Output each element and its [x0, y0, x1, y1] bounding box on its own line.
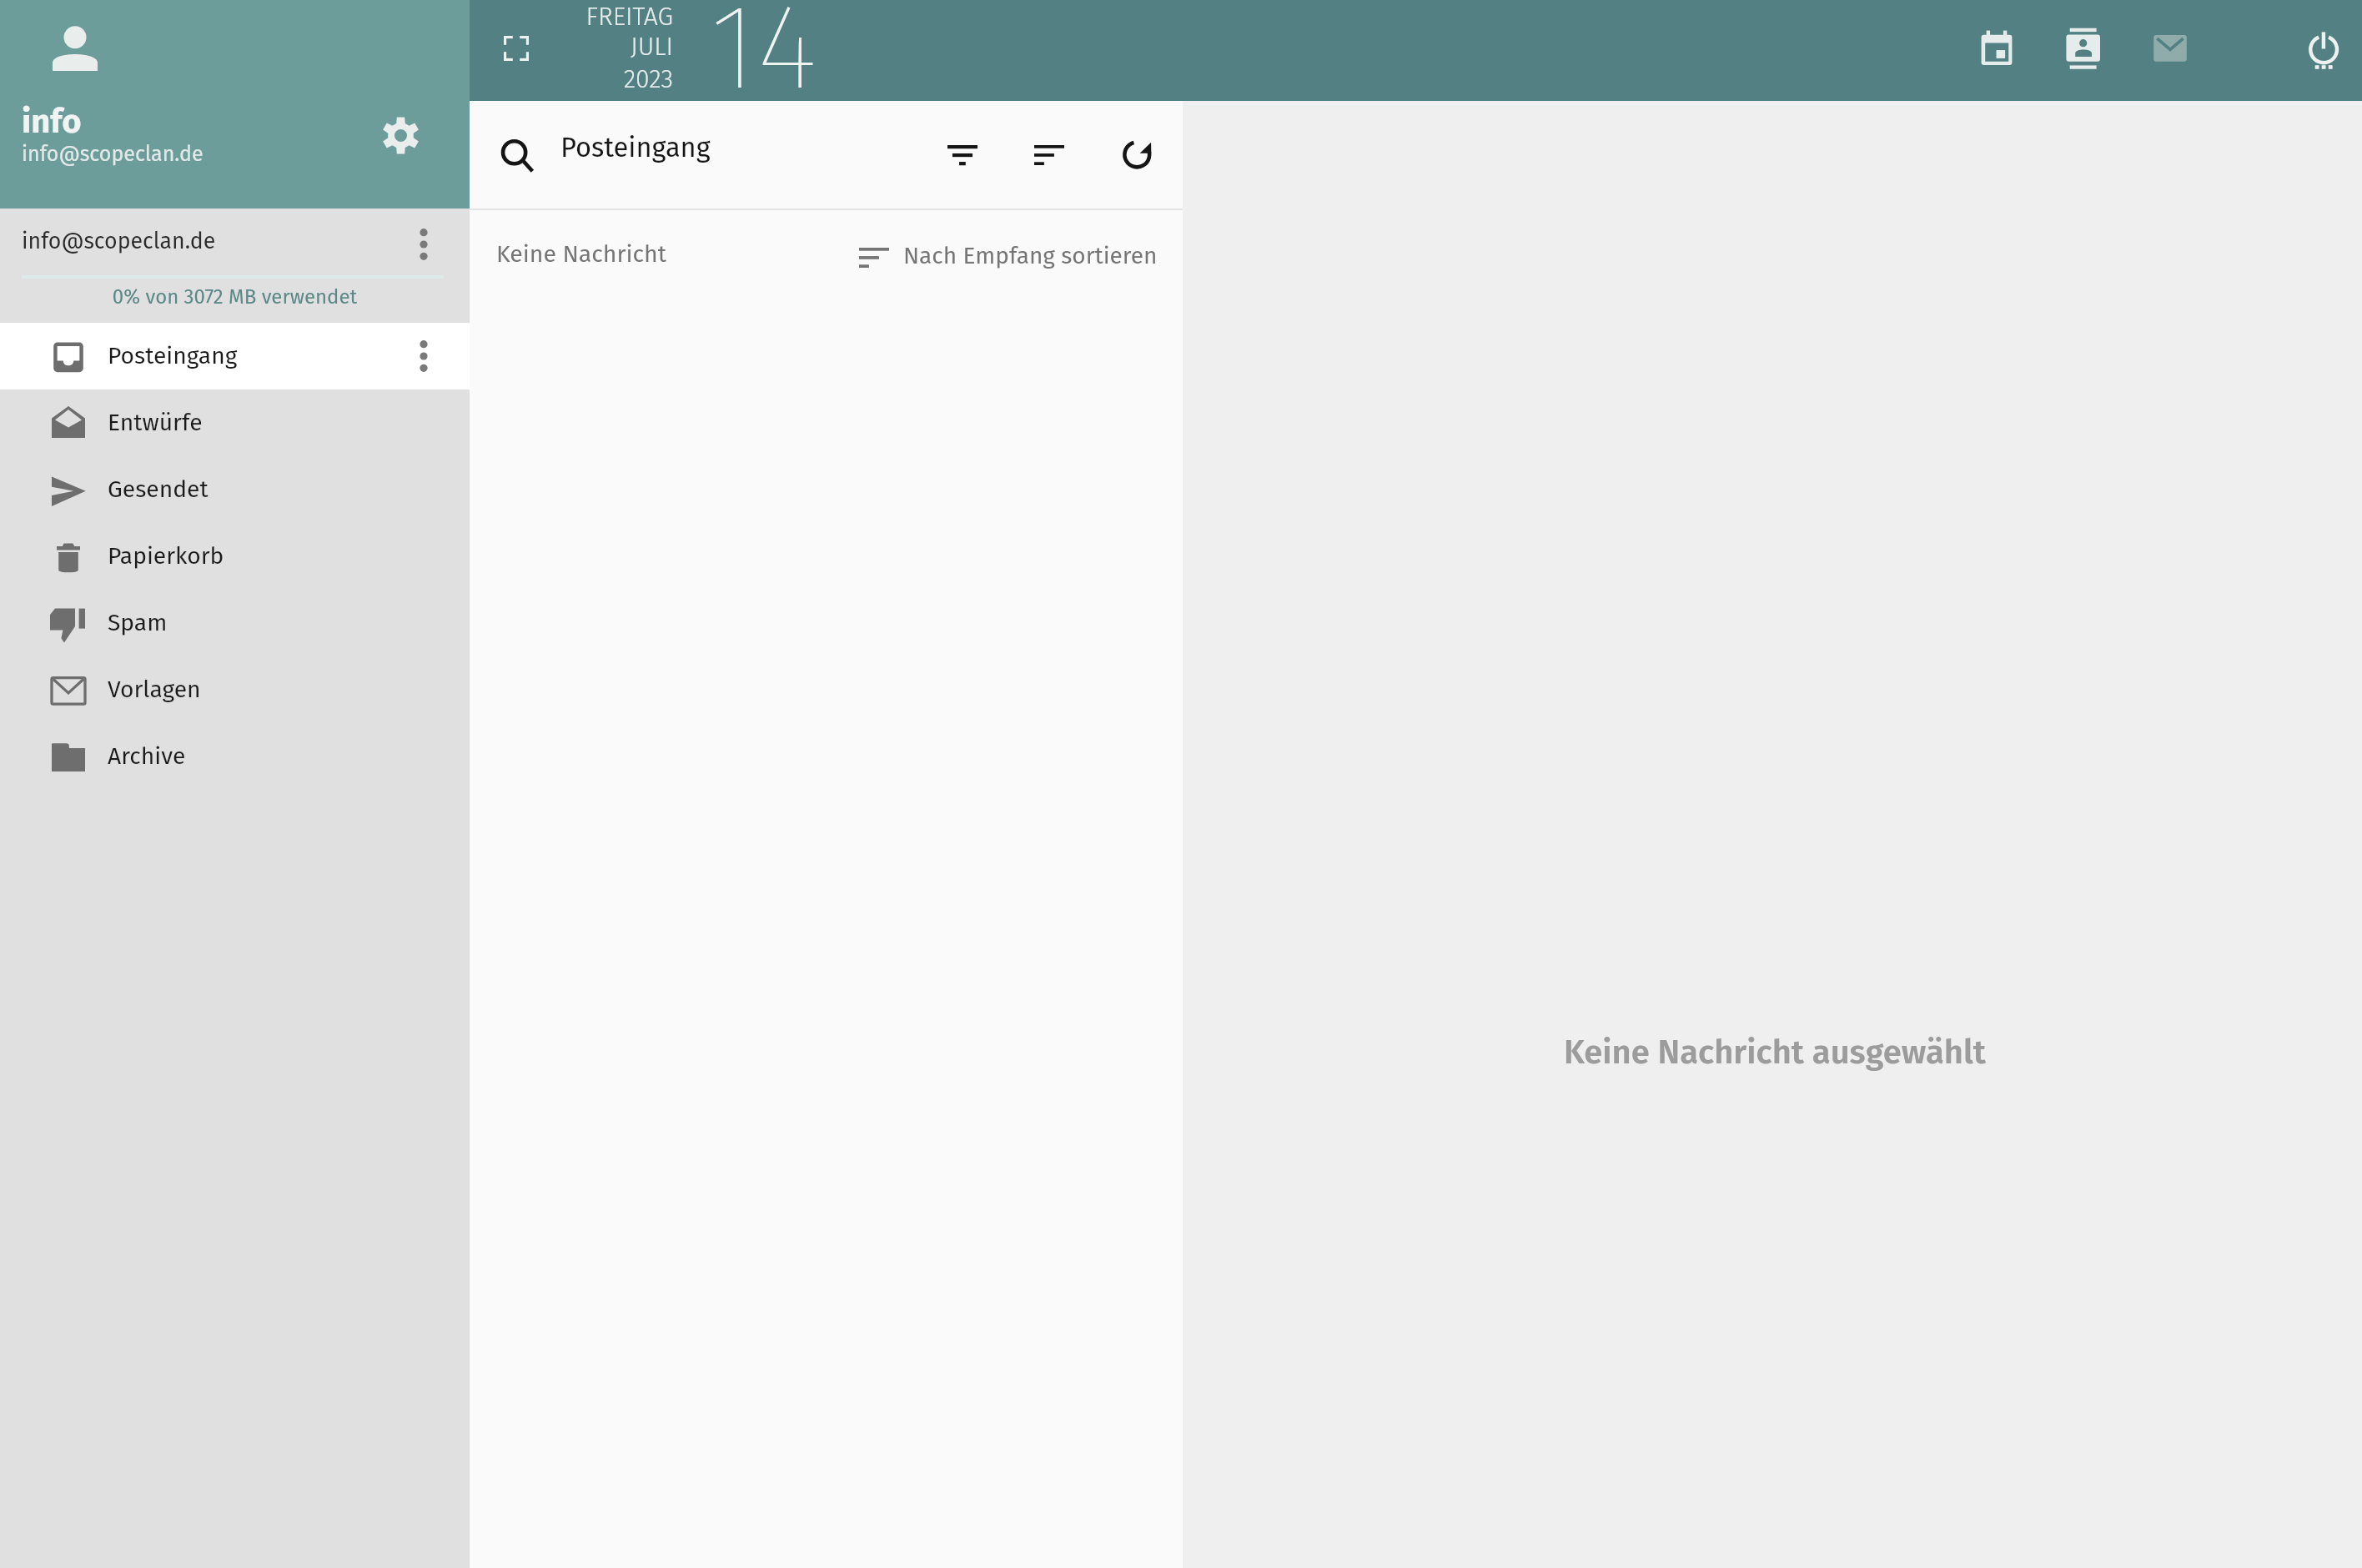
- button[interactable]: Entwürfe: [0, 389, 470, 456]
- staticText: Papierkorb: [108, 542, 224, 570]
- staticText: 14: [710, 0, 818, 119]
- staticText: info@scopeclan.de: [22, 228, 216, 254]
- button[interactable]: Settings: [382, 117, 420, 154]
- button[interactable]: Toggle fullscreen: [504, 36, 529, 61]
- button[interactable]: Account options: [402, 223, 445, 266]
- button[interactable]: info@scopeclan.de: [0, 209, 470, 323]
- staticText: Entwürfe: [108, 409, 203, 437]
- button[interactable]: Posteingang: [0, 323, 470, 389]
- staticText: Nach Empfang sortieren: [903, 242, 1158, 270]
- button[interactable]: Archive: [0, 723, 470, 790]
- button[interactable]: Papierkorb: [0, 523, 470, 590]
- button[interactable]: Spam: [0, 590, 470, 656]
- button[interactable]: Account: [53, 26, 98, 71]
- staticText: FREITAG: [523, 2, 673, 32]
- button[interactable]: Search: [500, 140, 536, 177]
- button[interactable]: Power / quit: [2303, 28, 2344, 69]
- staticText: info@scopeclan.de: [22, 142, 204, 167]
- staticText: Spam: [108, 609, 168, 637]
- staticText: Posteingang: [560, 132, 711, 164]
- staticText: info: [22, 102, 82, 142]
- button[interactable]: Gesendet: [0, 456, 470, 523]
- button[interactable]: Calendar: [1978, 29, 2016, 68]
- button[interactable]: Filter: [947, 145, 977, 165]
- staticText: 2023: [523, 64, 673, 94]
- staticText: Archive: [108, 742, 186, 771]
- staticText: Vorlagen: [108, 676, 201, 704]
- staticText: JULI: [523, 32, 673, 62]
- button[interactable]: Sort: [1034, 145, 1064, 165]
- staticText: Posteingang: [108, 342, 238, 370]
- button[interactable]: Mail: [2151, 29, 2189, 68]
- button[interactable]: Contacts: [2062, 28, 2103, 69]
- button[interactable]: Nach Empfang sortieren: [859, 244, 1158, 272]
- staticText: Keine Nachricht ausgewählt: [1564, 1033, 1986, 1073]
- staticText: Keine Nachricht: [496, 239, 666, 268]
- button[interactable]: Vorlagen: [0, 656, 470, 723]
- button[interactable]: Folder options: [402, 334, 445, 378]
- staticText: Gesendet: [108, 475, 209, 504]
- staticText: 0% von 3072 MB verwendet: [0, 285, 470, 309]
- button[interactable]: Refresh: [1123, 138, 1163, 178]
